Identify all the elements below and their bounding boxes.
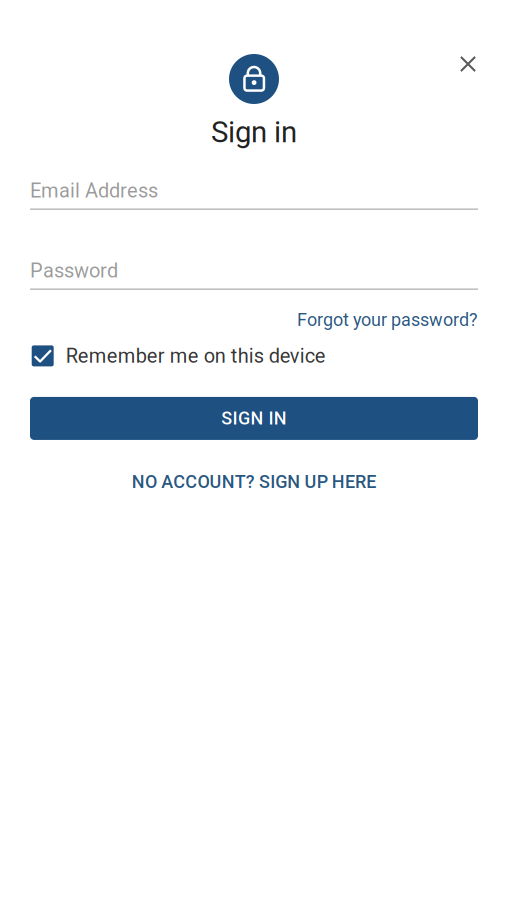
staticText: Remember me on this device — [66, 344, 326, 368]
staticText: Password — [30, 259, 118, 282]
staticText: Sign in — [211, 115, 297, 149]
staticText: SIGN IN — [221, 408, 287, 429]
button[interactable]: Remember me on this device — [30, 344, 326, 368]
button[interactable]: SIGN IN — [30, 397, 478, 440]
button[interactable]: Email Address — [30, 179, 478, 210]
staticText: Forgot your password? — [297, 309, 478, 330]
staticText: NO ACCOUNT? SIGN UP HERE — [132, 471, 376, 492]
button[interactable]: Forgot your password? — [297, 309, 478, 330]
button[interactable]: Password — [30, 259, 478, 290]
staticText: Email Address — [30, 179, 158, 202]
button[interactable]: Close — [446, 42, 490, 86]
button[interactable]: NO ACCOUNT? SIGN UP HERE — [30, 471, 478, 492]
